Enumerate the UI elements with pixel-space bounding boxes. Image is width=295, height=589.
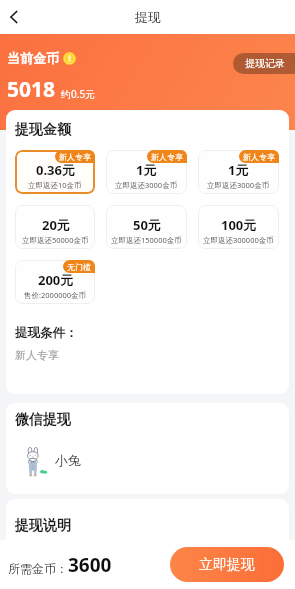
staticText: 立即返还3000金币 bbox=[207, 180, 270, 190]
button[interactable]: 200元 bbox=[15, 260, 95, 304]
staticText: 3600 bbox=[68, 552, 112, 578]
button[interactable]: 1元 bbox=[106, 150, 187, 194]
staticText: 新人专享 bbox=[59, 152, 91, 162]
button[interactable]: Back bbox=[0, 3, 28, 31]
staticText: 立即返还300000金币 bbox=[203, 235, 274, 245]
staticText: 提现说明 bbox=[15, 517, 71, 535]
staticText: 200元 bbox=[38, 271, 74, 289]
staticText: 当前金币 bbox=[7, 50, 59, 66]
button[interactable]: 1元 bbox=[198, 150, 279, 194]
staticText: 售价:2000000金币 bbox=[24, 290, 87, 300]
staticText: 立即返还3000金币 bbox=[115, 180, 178, 190]
staticText: 50元 bbox=[133, 216, 161, 234]
staticText: 0.36元 bbox=[36, 161, 75, 179]
staticText: 提现条件： bbox=[15, 325, 78, 341]
staticText: 提现金额 bbox=[15, 121, 71, 139]
staticText: 新人专享 bbox=[243, 152, 275, 162]
staticText: 5018 bbox=[7, 75, 56, 104]
staticText: 1、提现金额将在1-3个工作日内到账，请留意微信零钱到账通知。 bbox=[15, 542, 233, 552]
staticText: 小兔 bbox=[55, 452, 81, 468]
staticText: 立即返还10金币 bbox=[28, 180, 82, 190]
staticText: 1元 bbox=[136, 161, 157, 179]
staticText: 提现记录 bbox=[245, 57, 285, 70]
button[interactable]: 小兔 bbox=[15, 440, 279, 477]
staticText: 立即返还50000金币 bbox=[22, 235, 89, 245]
staticText: 提现 bbox=[135, 9, 161, 25]
button[interactable]: 100元 bbox=[198, 205, 279, 249]
staticText: 立即返还150000金币 bbox=[111, 235, 182, 245]
staticText: 微信提现 bbox=[15, 411, 71, 429]
staticText: 无门槛 bbox=[67, 262, 91, 272]
button[interactable]: 提现记录 bbox=[233, 53, 295, 74]
staticText: 新人专享 bbox=[151, 152, 183, 162]
staticText: 100元 bbox=[221, 216, 257, 234]
staticText: 1元 bbox=[228, 161, 249, 179]
button[interactable]: 20元 bbox=[15, 205, 95, 249]
button[interactable]: 50元 bbox=[106, 205, 187, 249]
staticText: 新人专享 bbox=[15, 348, 59, 362]
staticText: 立即提现 bbox=[199, 556, 255, 574]
staticText: 所需金币： bbox=[8, 561, 68, 576]
staticText: 20元 bbox=[42, 216, 70, 234]
staticText: 约0.5元 bbox=[61, 87, 96, 101]
button[interactable]: 0.36元 bbox=[15, 150, 95, 194]
button[interactable]: 立即提现 bbox=[170, 547, 284, 582]
